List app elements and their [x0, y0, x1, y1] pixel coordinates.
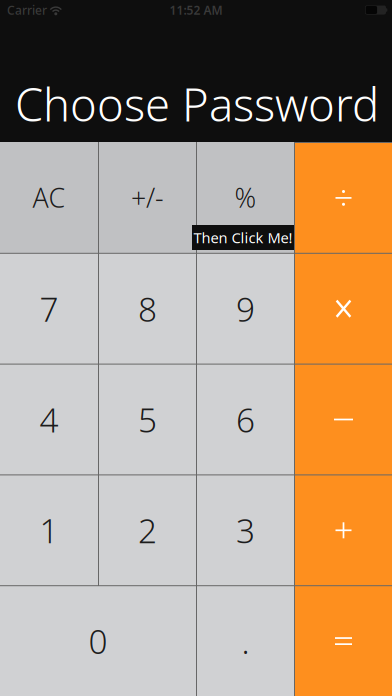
staticText: 1	[39, 508, 58, 552]
button[interactable]: 3	[197, 475, 294, 585]
staticText: 9	[236, 287, 255, 331]
staticText: 7	[39, 287, 58, 331]
button[interactable]: 1	[0, 475, 98, 585]
button[interactable]: 9	[197, 254, 294, 364]
staticText: 4	[39, 397, 58, 442]
button[interactable]: Subtract	[295, 365, 392, 474]
button[interactable]: 5	[99, 365, 196, 474]
staticText: 5	[138, 397, 157, 442]
button[interactable]: Add	[295, 475, 392, 585]
button[interactable]: AC	[0, 142, 98, 253]
staticText: 8	[138, 287, 157, 331]
staticText: .	[241, 619, 249, 663]
staticText: Choose Password	[15, 74, 379, 134]
button[interactable]: 2	[99, 475, 196, 585]
button[interactable]: %	[197, 142, 294, 253]
button[interactable]: 4	[0, 365, 98, 474]
staticText: +/-	[131, 180, 164, 215]
button[interactable]: .	[197, 586, 294, 696]
staticText: AC	[32, 180, 65, 215]
staticText: 2	[138, 508, 157, 552]
staticText: Carrier	[7, 2, 47, 18]
staticText: 3	[236, 508, 255, 552]
staticText: 0	[88, 619, 107, 663]
button[interactable]: Multiply	[295, 254, 392, 364]
staticText: Then Click Me!	[193, 228, 292, 247]
button[interactable]: +/-	[99, 142, 196, 253]
button[interactable]: 6	[197, 365, 294, 474]
button[interactable]: 0	[0, 586, 196, 696]
button[interactable]: 8	[99, 254, 196, 364]
button[interactable]: Equals	[295, 586, 392, 696]
staticText: 11:52 AM	[169, 2, 222, 18]
button[interactable]: Divide	[295, 143, 392, 253]
button[interactable]: 7	[0, 254, 98, 364]
staticText: 6	[236, 397, 255, 442]
staticText: %	[234, 180, 256, 215]
